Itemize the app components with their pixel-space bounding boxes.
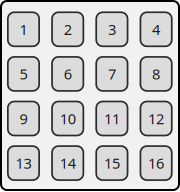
staticText: 4: [152, 20, 160, 39]
staticText: 7: [108, 64, 116, 84]
button[interactable]: 2: [51, 11, 84, 47]
button[interactable]: 12: [140, 101, 173, 136]
button[interactable]: 13: [7, 145, 40, 181]
button[interactable]: 8: [140, 56, 173, 92]
staticText: 16: [148, 153, 164, 173]
button[interactable]: 15: [95, 145, 128, 181]
button[interactable]: 1: [7, 11, 40, 47]
button[interactable]: 3: [95, 11, 128, 47]
staticText: 10: [60, 109, 76, 128]
staticText: 5: [19, 64, 27, 84]
staticText: 8: [152, 64, 160, 84]
staticText: 2: [64, 20, 72, 39]
staticText: 13: [15, 153, 31, 173]
button[interactable]: 11: [95, 101, 128, 136]
staticText: 6: [64, 64, 72, 84]
button[interactable]: 9: [7, 101, 40, 136]
staticText: 9: [19, 109, 27, 128]
button[interactable]: 4: [140, 11, 173, 47]
staticText: 1: [19, 20, 27, 39]
button[interactable]: 5: [7, 56, 40, 92]
button[interactable]: 6: [51, 56, 84, 92]
button[interactable]: 16: [140, 145, 173, 181]
staticText: 15: [104, 153, 120, 173]
staticText: 11: [104, 109, 120, 128]
button[interactable]: 10: [51, 101, 84, 136]
staticText: 3: [108, 20, 116, 39]
staticText: 12: [148, 109, 164, 128]
button[interactable]: 7: [95, 56, 128, 92]
staticText: 14: [60, 153, 76, 173]
button[interactable]: 14: [51, 145, 84, 181]
